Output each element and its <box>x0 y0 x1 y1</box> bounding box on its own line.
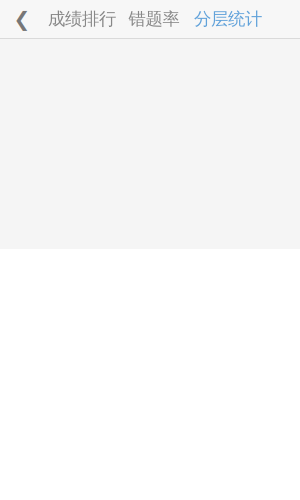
staticText: ❮ <box>13 8 30 30</box>
staticText: 分层统计 <box>194 8 262 30</box>
staticText: 成绩排行 <box>48 8 116 30</box>
button[interactable]: Back <box>0 0 44 38</box>
button[interactable]: 错题率 <box>120 0 188 38</box>
button[interactable]: 分层统计 <box>188 0 268 38</box>
button[interactable]: 成绩排行 <box>44 0 120 38</box>
staticText: 错题率 <box>128 8 179 30</box>
